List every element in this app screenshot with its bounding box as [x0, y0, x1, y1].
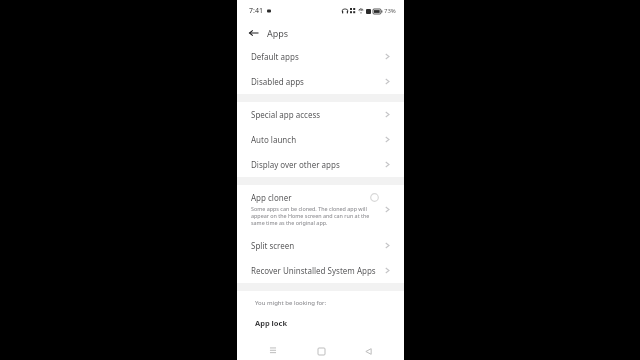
- button[interactable]: Special app access: [237, 102, 404, 127]
- button[interactable]: App cloner: [237, 185, 404, 233]
- button[interactable]: Split screen: [237, 233, 404, 258]
- button[interactable]: Recover Uninstalled System Apps: [237, 258, 404, 283]
- staticText: Some apps can be cloned. The cloned app …: [251, 205, 379, 226]
- other: App cloner toggle: [370, 193, 379, 202]
- staticText: App cloner: [251, 192, 370, 203]
- button[interactable]: Default apps: [237, 44, 404, 69]
- staticText: Default apps: [251, 51, 385, 62]
- staticText: Auto launch: [251, 134, 385, 145]
- staticText: Recover Uninstalled System Apps: [251, 265, 385, 276]
- staticText: Special app access: [251, 109, 385, 120]
- staticText: 73%: [384, 7, 396, 15]
- staticText: You might be looking for:: [255, 299, 327, 307]
- button[interactable]: Back: [245, 24, 263, 42]
- button[interactable]: Back: [356, 342, 380, 360]
- staticText: App lock: [255, 318, 288, 328]
- staticText: Display over other apps: [251, 159, 385, 170]
- button[interactable]: Display over other apps: [237, 152, 404, 177]
- staticText: Apps: [267, 27, 289, 39]
- staticText: Disabled apps: [251, 76, 385, 87]
- staticText: 7:41: [249, 6, 263, 16]
- button[interactable]: Disabled apps: [237, 69, 404, 94]
- staticText: Split screen: [251, 240, 385, 251]
- button[interactable]: App lock: [237, 316, 404, 334]
- button[interactable]: Home: [309, 342, 333, 360]
- button[interactable]: Recent apps: [261, 342, 285, 360]
- button[interactable]: Auto launch: [237, 127, 404, 152]
